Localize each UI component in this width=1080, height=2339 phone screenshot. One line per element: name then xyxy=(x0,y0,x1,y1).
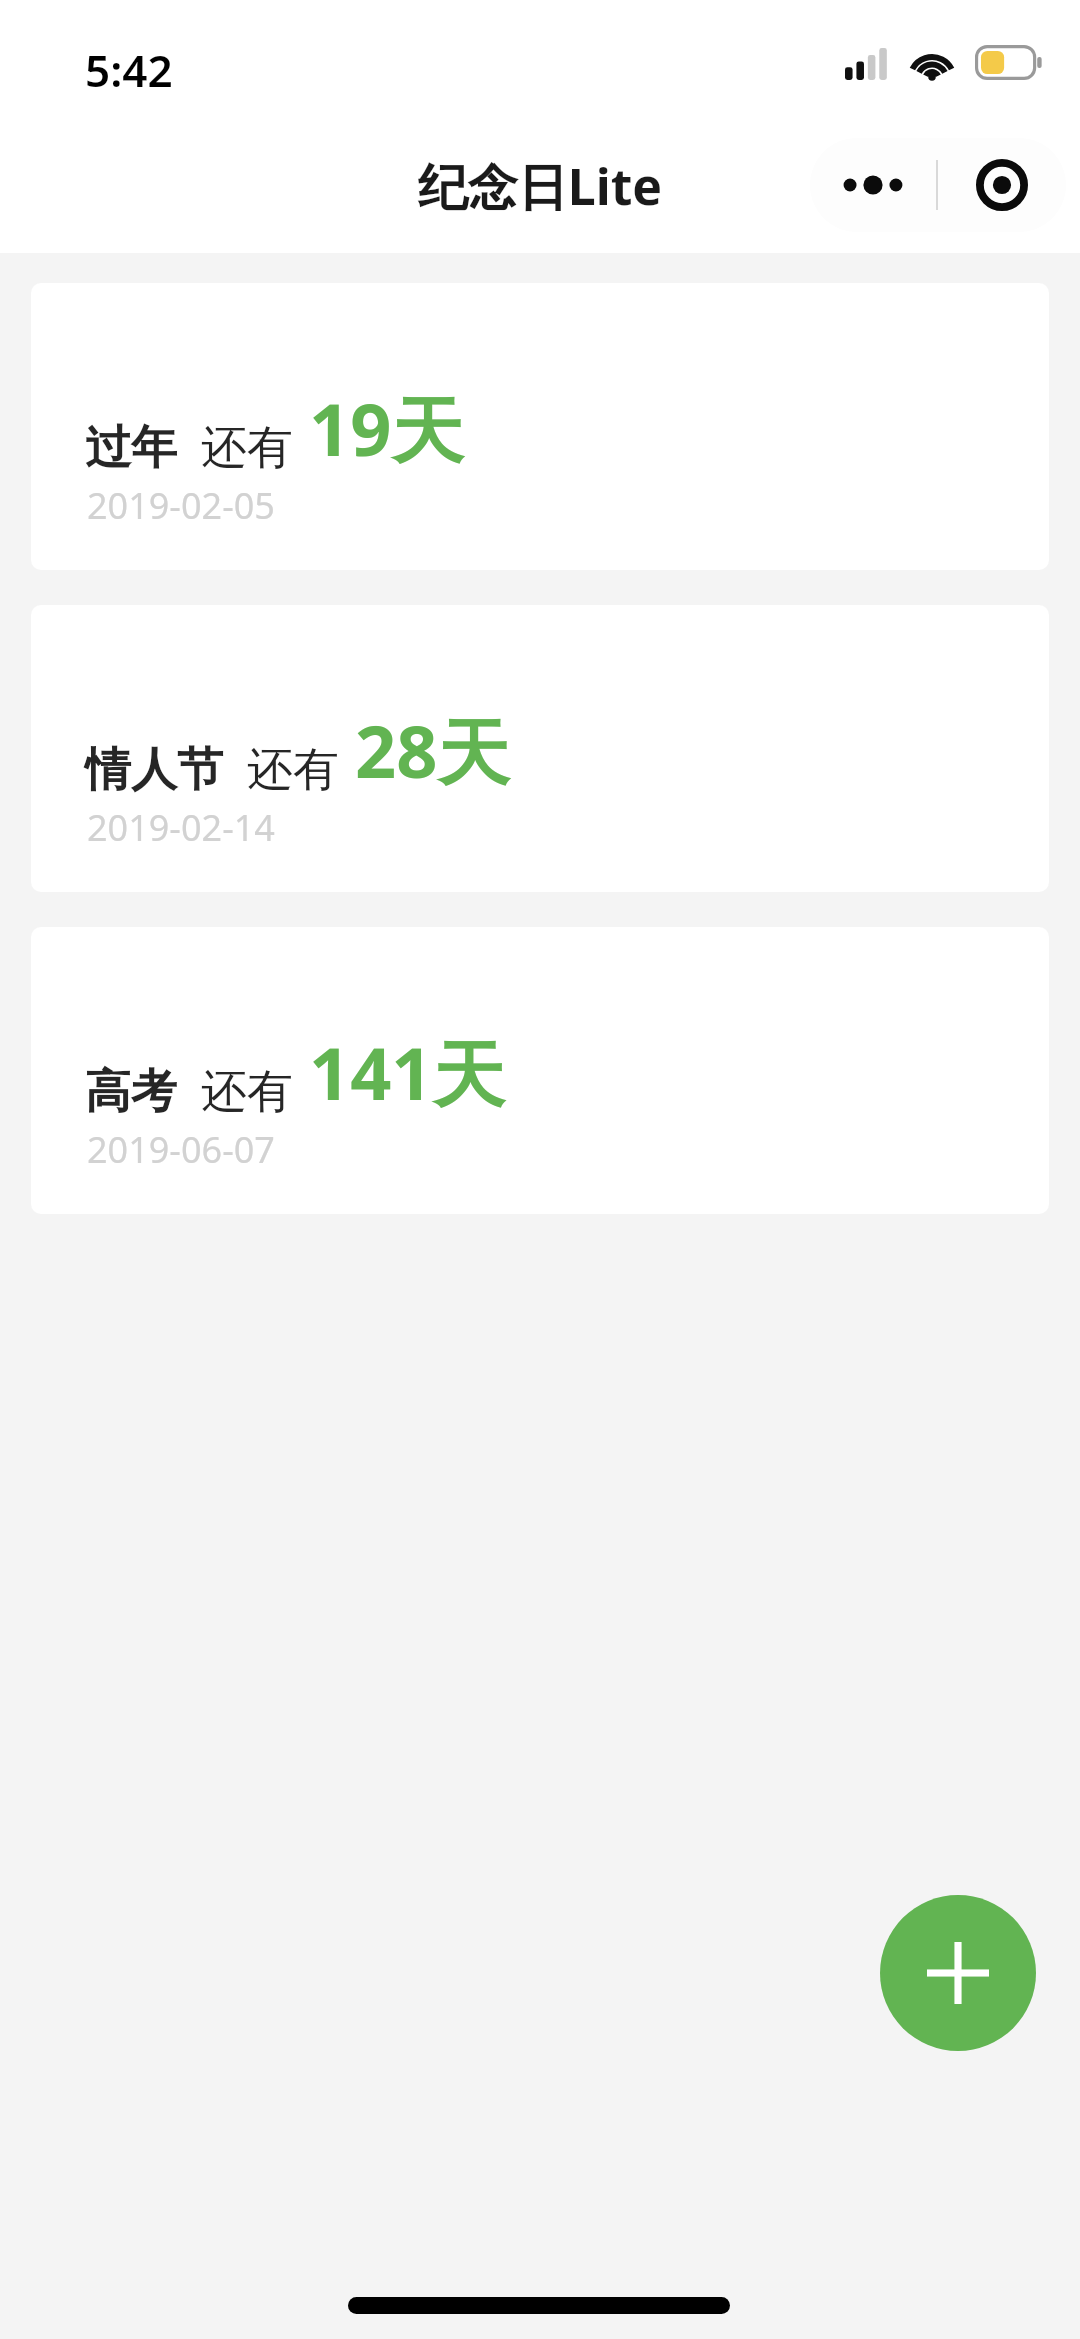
staticText: 情人节 xyxy=(85,741,223,799)
staticText: 高考 xyxy=(85,1063,177,1121)
button[interactable]: 更多 xyxy=(810,138,936,232)
staticText: 纪念日Lite xyxy=(0,152,1080,220)
staticText: 2019-06-07 xyxy=(87,1125,275,1174)
staticText: 2019-02-05 xyxy=(87,481,275,530)
button[interactable]: 情人节 xyxy=(31,605,1049,892)
staticText: 5:42 xyxy=(85,40,173,100)
button[interactable]: 过年 xyxy=(31,283,1049,570)
staticText: 过年 xyxy=(85,419,177,477)
button[interactable]: 关闭 xyxy=(938,138,1066,232)
staticText: 还有 xyxy=(247,741,339,799)
staticText: 28天 xyxy=(355,701,510,799)
staticText: 还有 xyxy=(201,1063,293,1121)
button[interactable]: 添加纪念日 xyxy=(880,1895,1036,2051)
button[interactable]: 高考 xyxy=(31,927,1049,1214)
staticText: 19天 xyxy=(309,379,464,477)
staticText: 141天 xyxy=(309,1023,505,1121)
staticText: 还有 xyxy=(201,419,293,477)
staticText: 2019-02-14 xyxy=(87,803,275,852)
